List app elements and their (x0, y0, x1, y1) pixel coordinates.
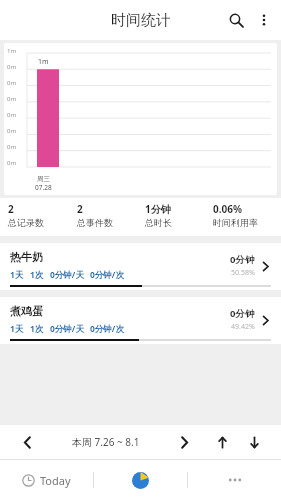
staticText: 0m (7, 111, 17, 119)
staticText: 0分钟/天 (50, 323, 84, 335)
staticText: 0m (7, 63, 17, 71)
button[interactable]: Today (0, 460, 93, 500)
button[interactable]: 热牛奶 (0, 243, 281, 290)
button[interactable]: Search (221, 5, 251, 35)
staticText: 0m (7, 79, 17, 87)
button[interactable]: Previous week (14, 429, 40, 455)
staticText: 本周 7.26 ~ 8.1 (72, 435, 140, 449)
staticText: 1分钟 (145, 202, 171, 216)
staticText: 07.28 (35, 183, 52, 192)
staticText: 1天 (10, 269, 24, 281)
staticText: 0分钟/天 (50, 269, 84, 281)
button[interactable]: Scroll up (209, 429, 235, 455)
staticText: 时间利用率 (213, 217, 258, 228)
staticText: 总时长 (145, 217, 172, 228)
button[interactable]: More (188, 460, 281, 500)
staticText: 0分钟 (230, 253, 255, 266)
staticText: Today (40, 473, 71, 488)
staticText: 0m (7, 143, 17, 151)
staticText: 2 (77, 202, 83, 216)
button[interactable]: 煮鸡蛋 (0, 297, 281, 344)
staticText: 2 (8, 202, 14, 216)
staticText: 总事件数 (77, 217, 113, 228)
staticText: 总记录数 (8, 217, 44, 228)
staticText: 1m (38, 57, 49, 67)
staticText: 0分钟/次 (90, 323, 124, 335)
staticText: 热牛奶 (10, 250, 43, 264)
button[interactable]: More options (251, 7, 277, 33)
staticText: 0分钟/次 (90, 269, 124, 281)
staticText: 煮鸡蛋 (10, 304, 43, 318)
staticText: 0m (7, 127, 17, 135)
button[interactable]: Scroll down (241, 429, 267, 455)
staticText: 周三 (37, 175, 50, 183)
staticText: 0分钟 (230, 307, 255, 320)
staticText: 1天 (10, 323, 24, 335)
staticText: 1次 (30, 269, 44, 281)
staticText: 50.58% (231, 268, 255, 278)
button[interactable]: Statistics (94, 460, 187, 500)
staticText: 0m (7, 159, 17, 167)
staticText: 49.42% (231, 322, 255, 332)
staticText: 0m (7, 95, 17, 103)
button[interactable]: Next week (171, 429, 197, 455)
staticText: 时间统计 (111, 11, 171, 30)
staticText: 1m (7, 47, 17, 55)
staticText: 1次 (30, 323, 44, 335)
staticText: 0.06% (213, 202, 242, 216)
